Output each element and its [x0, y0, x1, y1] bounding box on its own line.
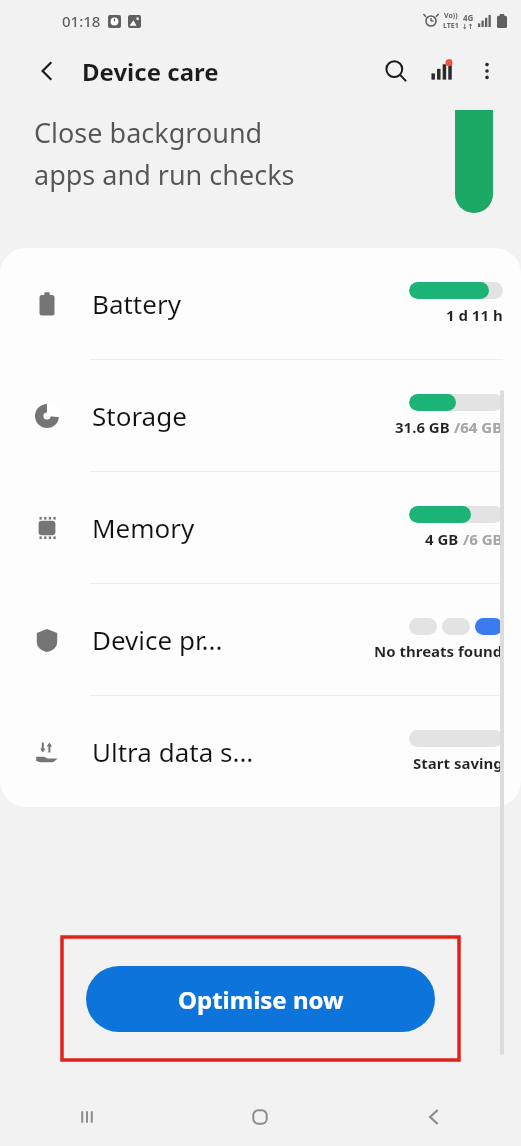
staticText: Vo)) [444, 11, 458, 21]
staticText: Device care [82, 55, 219, 88]
button[interactable]: Usage statistics [419, 48, 465, 94]
staticText: Optimise now [178, 983, 344, 1016]
button[interactable]: Recent apps [0, 1088, 173, 1146]
staticText: Battery [92, 286, 409, 321]
staticText: /64 GB [454, 417, 503, 437]
staticText: Ultra data s... [92, 734, 409, 769]
staticText: Start saving [413, 753, 503, 773]
staticText: 31.6 GB [395, 417, 454, 437]
button[interactable]: Home [173, 1088, 347, 1146]
button[interactable]: Back [347, 1088, 521, 1146]
button[interactable]: Optimise now [86, 966, 435, 1032]
staticText: No threats found [374, 641, 503, 661]
staticText: Device pr... [92, 622, 374, 657]
button[interactable]: Back [26, 50, 68, 92]
button[interactable]: Search [373, 48, 419, 94]
staticText: Close background [34, 114, 263, 151]
staticText: ↓↑ [462, 23, 474, 31]
staticText: 1 d 11 h [446, 305, 503, 325]
staticText: 01:18 [62, 11, 101, 31]
staticText: /6 GB [463, 529, 503, 549]
button[interactable]: Memory [0, 472, 521, 583]
button[interactable]: Device pr... [0, 584, 521, 695]
staticText: 4G [463, 12, 474, 23]
button[interactable]: Ultra data s... [0, 696, 521, 807]
staticText: apps and run checks [34, 156, 295, 193]
staticText: Storage [92, 398, 395, 433]
staticText: 4 GB [425, 529, 463, 549]
button[interactable]: More options [465, 49, 509, 93]
button[interactable]: Storage [0, 360, 521, 471]
button[interactable]: Battery [0, 248, 521, 359]
staticText: LTE1 [443, 21, 459, 31]
staticText: Memory [92, 510, 409, 545]
